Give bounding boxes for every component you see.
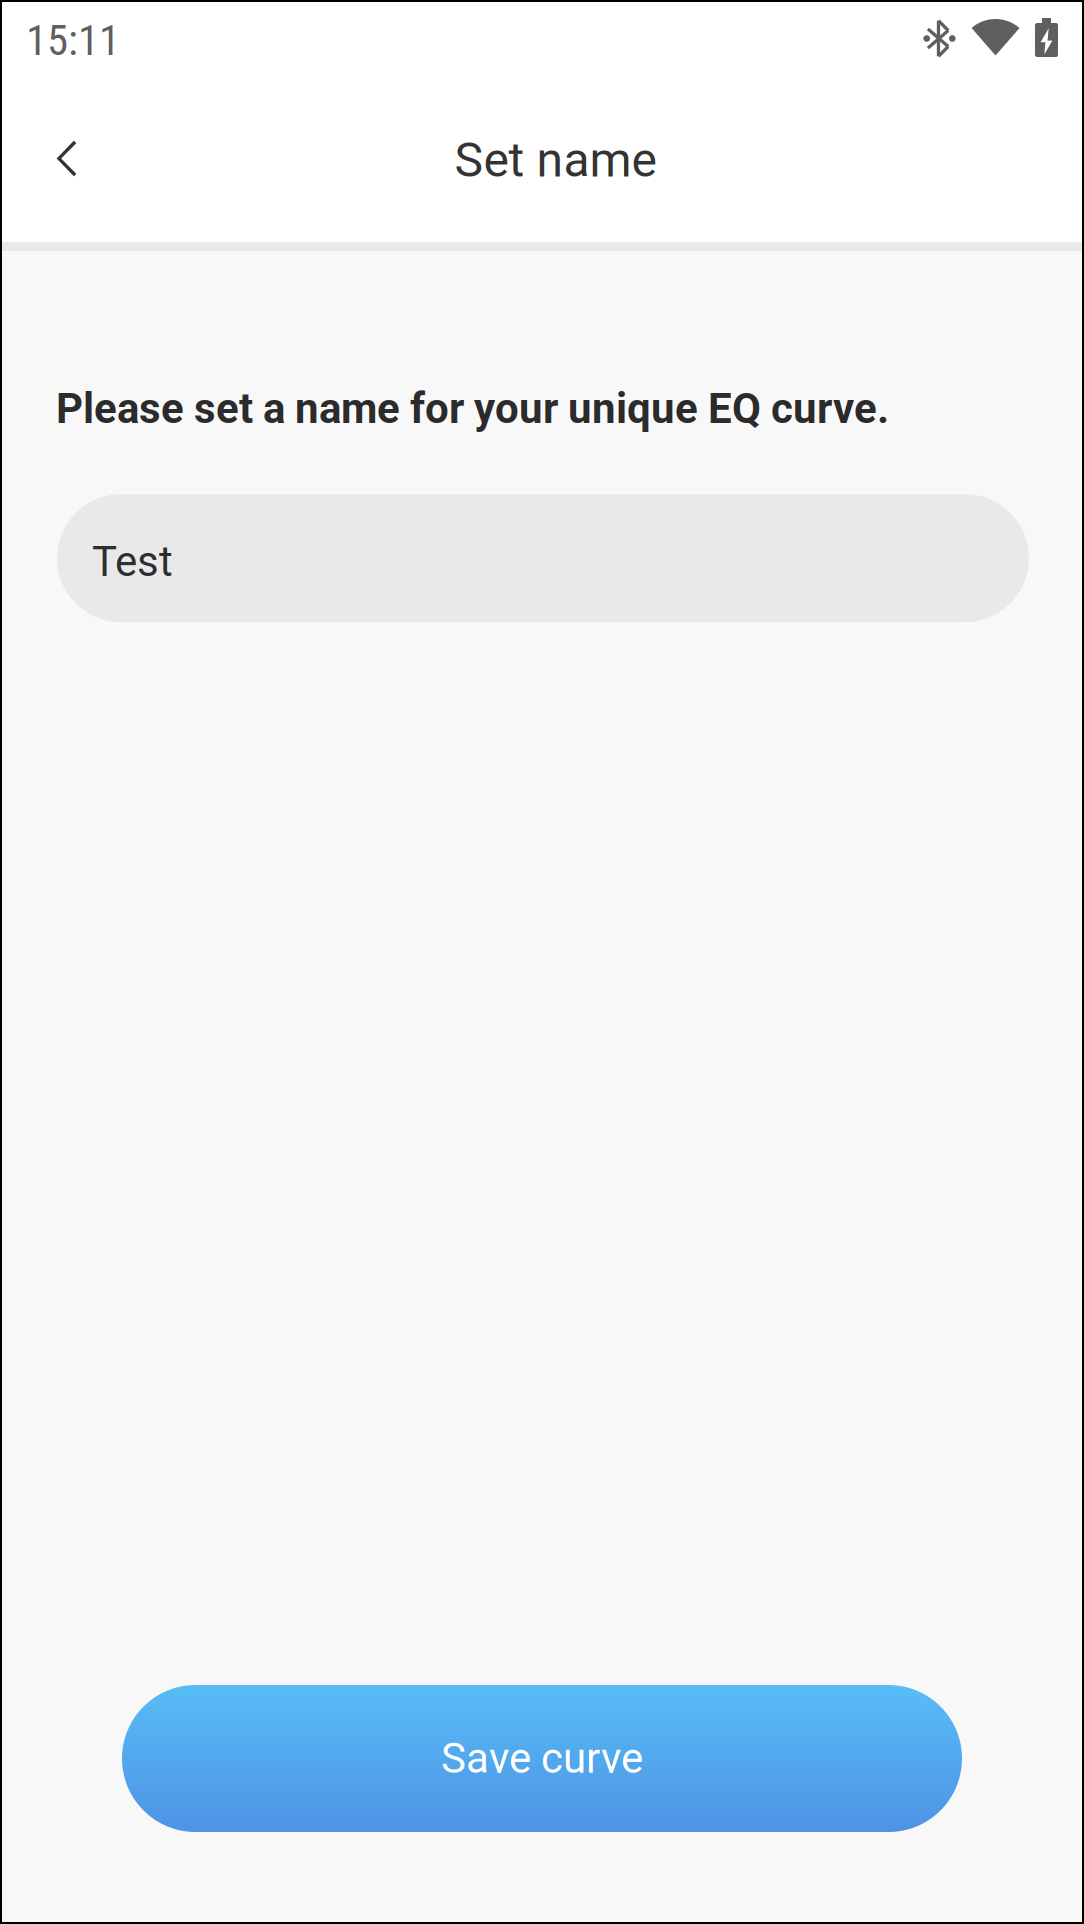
staticText: 15:11	[26, 15, 120, 65]
staticText: Save curve	[441, 1734, 643, 1783]
staticText: Set name	[454, 132, 656, 188]
staticText: Please set a name for your unique EQ cur…	[56, 384, 889, 433]
button[interactable]: Test	[57, 494, 1029, 622]
button[interactable]: Save curve	[122, 1685, 962, 1832]
button[interactable]: Back	[2, 96, 110, 220]
staticText: Test	[92, 537, 173, 586]
